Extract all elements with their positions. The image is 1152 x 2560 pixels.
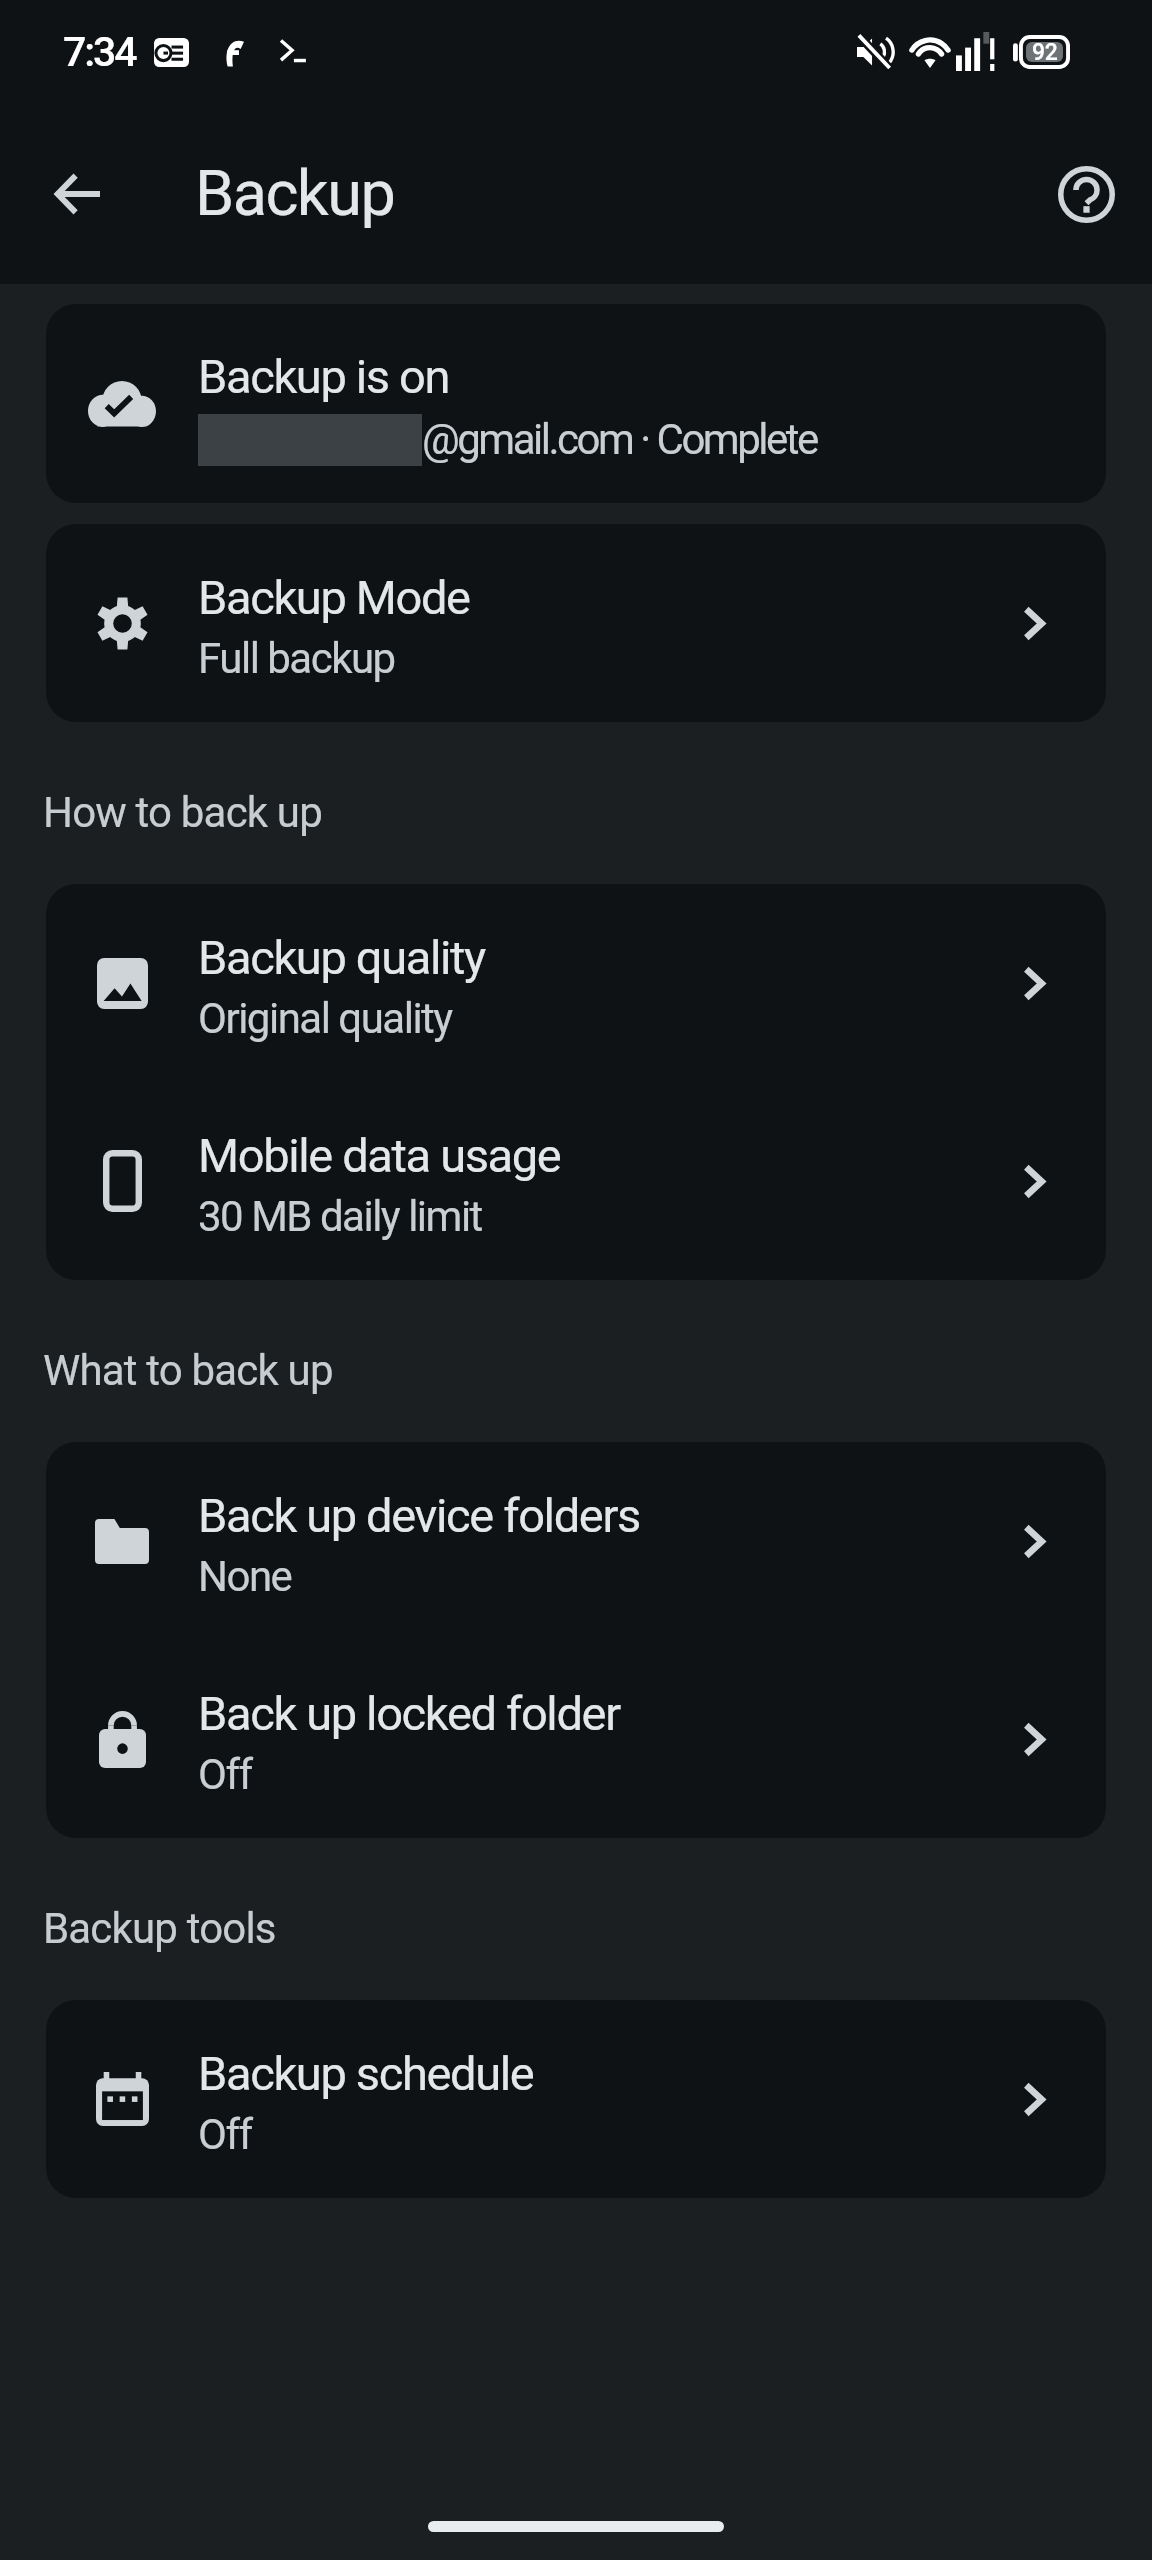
- staticText: Mobile data usage: [198, 1128, 561, 1183]
- staticText: 7:34: [63, 28, 136, 76]
- button[interactable]: Backup Mode: [46, 524, 1106, 722]
- button[interactable]: Backup schedule: [46, 2000, 1106, 2198]
- staticText: Backup Mode: [198, 570, 470, 625]
- button[interactable]: Back up device folders: [46, 1442, 1106, 1640]
- staticText: Original quality: [198, 994, 452, 1043]
- staticText: Full backup: [198, 634, 395, 683]
- staticText: Backup: [195, 157, 395, 231]
- staticText: Backup quality: [198, 930, 485, 985]
- staticText: Off: [198, 2110, 252, 2159]
- button[interactable]: Back up locked folder: [46, 1640, 1106, 1838]
- button[interactable]: Mobile data usage: [46, 1082, 1106, 1280]
- button[interactable]: Help: [1034, 142, 1138, 246]
- staticText: How to back up: [43, 788, 322, 837]
- staticText: None: [198, 1552, 292, 1601]
- staticText: Back up locked folder: [198, 1686, 620, 1741]
- button[interactable]: Backup is on: [46, 304, 1106, 503]
- staticText: Back up device folders: [198, 1488, 640, 1543]
- staticText: 30 MB daily limit: [198, 1192, 482, 1241]
- staticText: Off: [198, 1750, 252, 1799]
- staticText: @gmail.com · Complete: [422, 415, 817, 464]
- button[interactable]: Navigate up: [25, 142, 129, 246]
- staticText: What to back up: [43, 1346, 333, 1395]
- button[interactable]: Backup quality: [46, 884, 1106, 1082]
- staticText: Backup is on: [198, 349, 450, 404]
- staticText: Backup tools: [43, 1904, 276, 1953]
- staticText: Backup schedule: [198, 2046, 534, 2101]
- staticText: 92: [1032, 39, 1058, 66]
